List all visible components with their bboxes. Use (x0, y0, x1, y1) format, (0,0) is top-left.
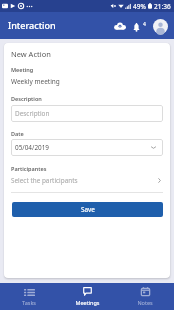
button[interactable]: Description (11, 105, 163, 122)
staticText: New Action (11, 49, 51, 59)
staticText: Save (81, 205, 95, 214)
staticText: Interaction (8, 19, 56, 31)
staticText: Select the participants (11, 176, 78, 185)
staticText: Tasks (22, 299, 36, 306)
staticText: Date (11, 130, 24, 137)
button[interactable]: Notifications (131, 16, 148, 36)
staticText: Meetings (75, 299, 100, 306)
staticText: Description (15, 109, 50, 118)
button[interactable]: Notes (116, 283, 174, 310)
button[interactable]: Save (12, 202, 163, 217)
staticText: 49% (133, 2, 146, 11)
button[interactable]: Meetings (58, 283, 116, 310)
button[interactable]: Select the participants (11, 174, 163, 186)
staticText: Notes (137, 299, 153, 306)
staticText: Participantes (11, 165, 47, 172)
button[interactable]: Sync (111, 16, 128, 36)
button[interactable]: Profile (152, 18, 168, 34)
button[interactable]: Tasks (0, 283, 58, 310)
staticText: Description (11, 95, 42, 102)
staticText: 05/04/2019 (15, 143, 49, 152)
staticText: 21:36 (154, 2, 171, 11)
staticText: Meeting (11, 66, 34, 73)
staticText: 4 (143, 21, 146, 28)
button[interactable]: 05/04/2019 (11, 139, 163, 156)
staticText: Weekly meeting (11, 77, 60, 86)
